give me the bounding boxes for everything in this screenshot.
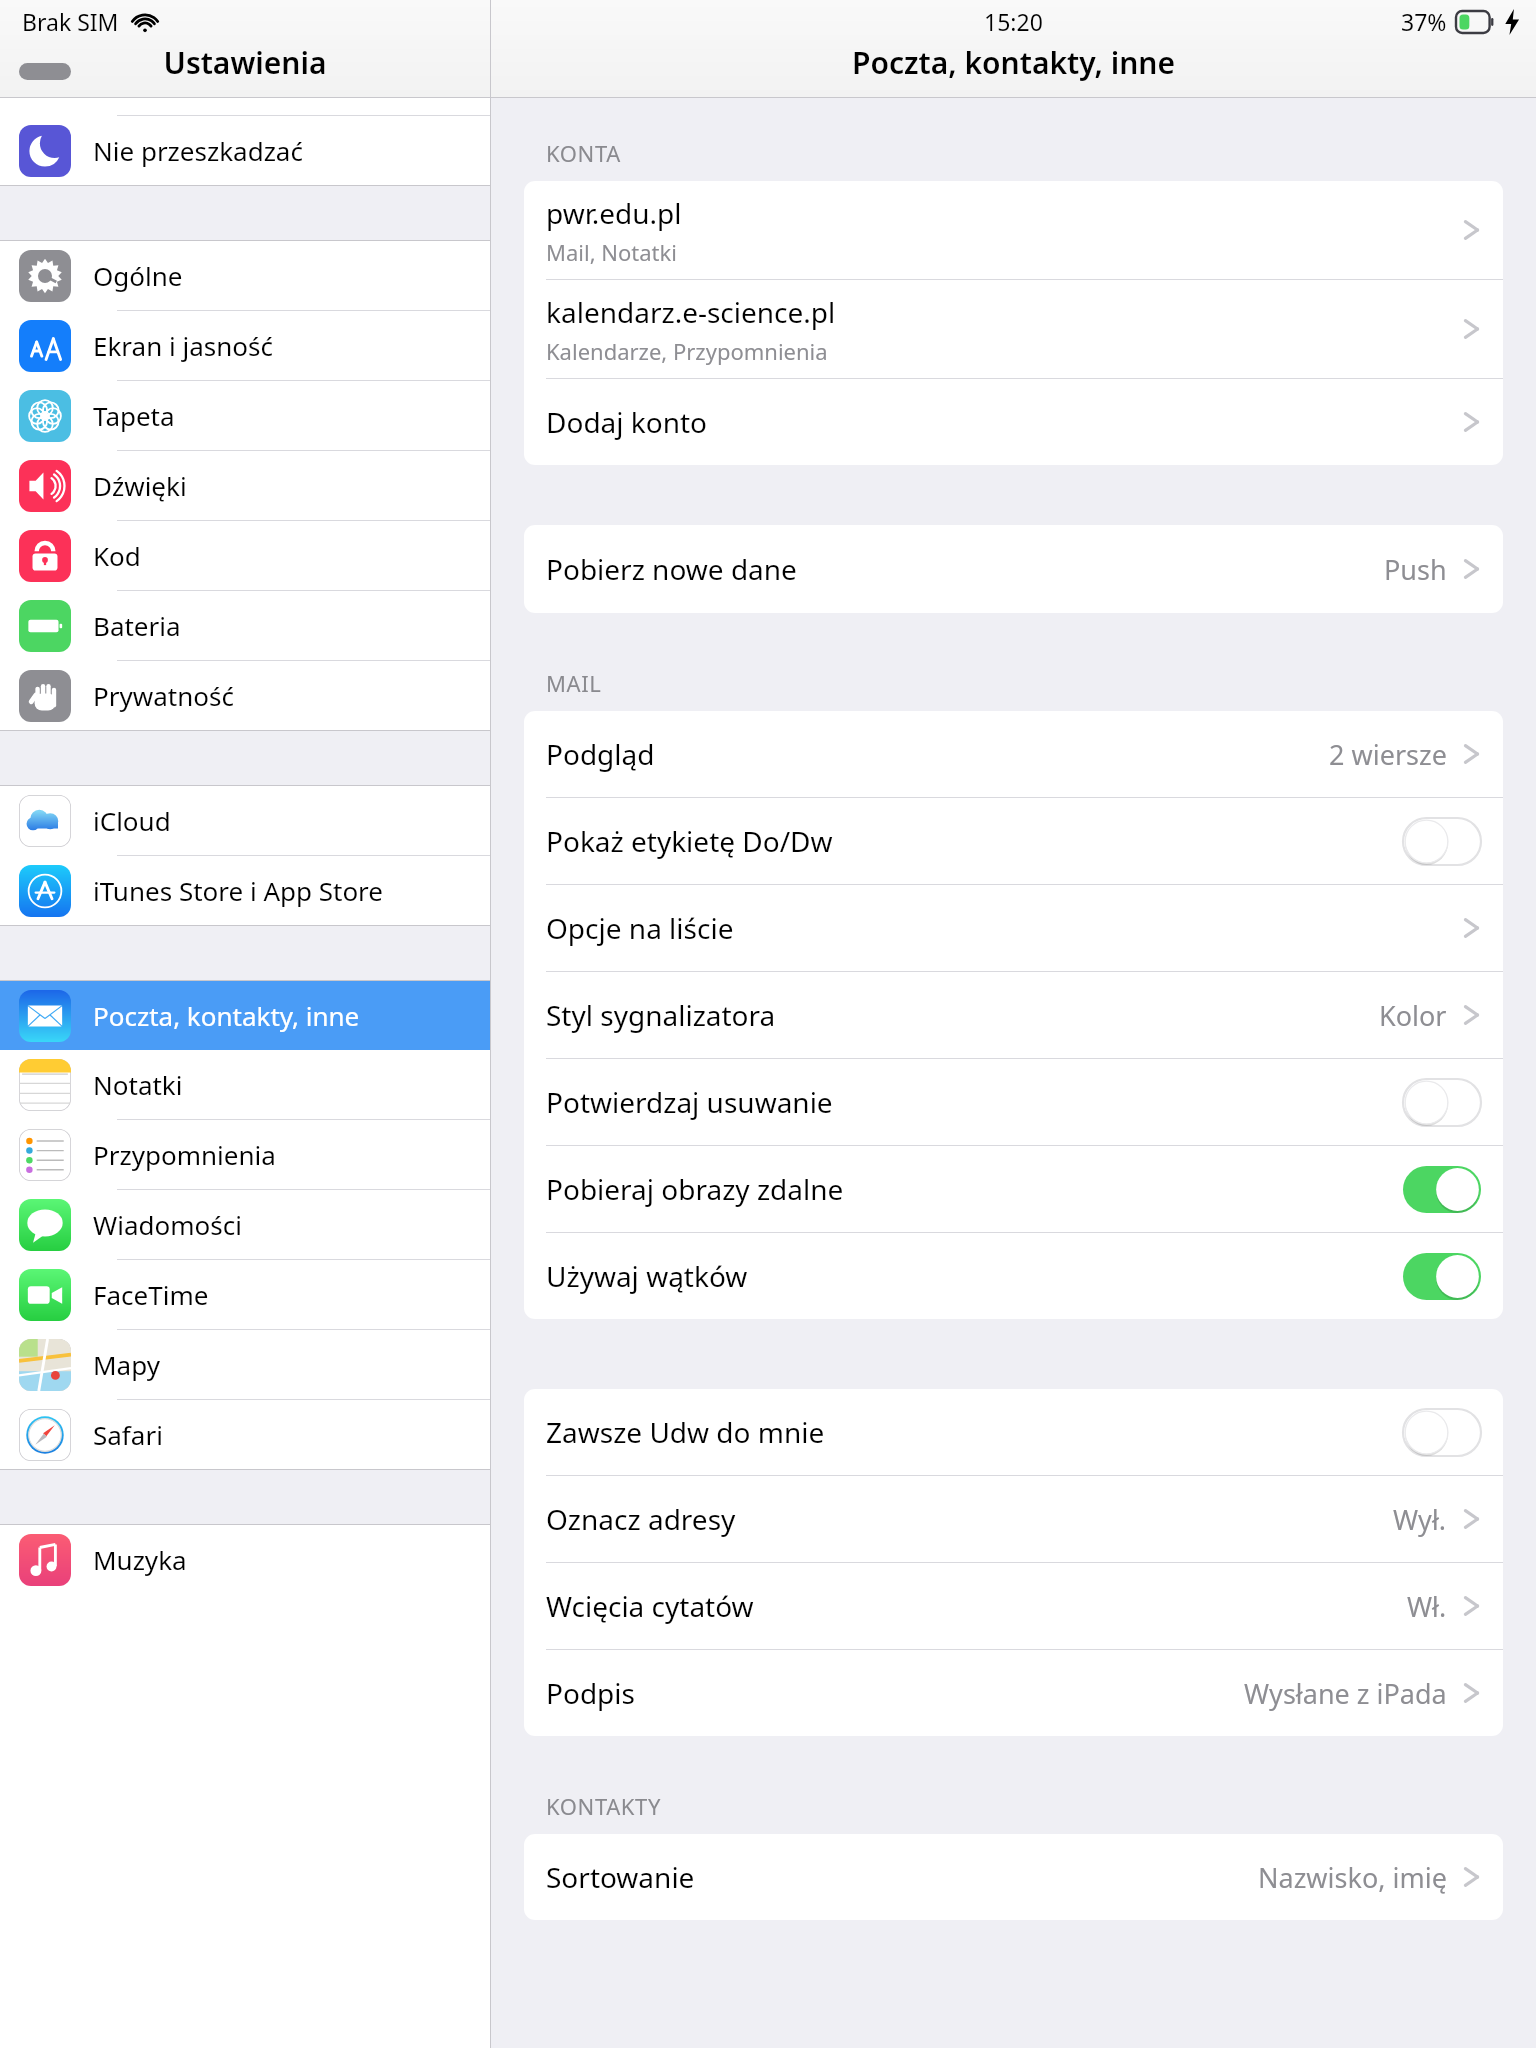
button[interactable]	[1403, 1079, 1481, 1126]
staticText: 2 wiersze	[1329, 736, 1447, 773]
staticText: 37%	[1401, 6, 1447, 37]
button[interactable]: Muzyka	[0, 1525, 490, 1594]
staticText: Przypomnienia	[93, 1137, 276, 1172]
button[interactable]: Wiadomości	[0, 1190, 490, 1259]
staticText: Używaj wątków	[546, 1257, 748, 1295]
staticText: Opcje na liście	[546, 909, 734, 947]
staticText: Push	[1384, 551, 1447, 588]
staticText: Zawsze Udw do mnie	[546, 1413, 825, 1451]
button[interactable]: iTunes Store i App Store	[0, 856, 490, 925]
button[interactable]: Podgląd	[524, 711, 1503, 797]
staticText: Ogólne	[93, 258, 183, 293]
staticText: Wysłane z iPada	[1244, 1675, 1447, 1712]
button[interactable]: Prywatność	[0, 661, 490, 730]
button[interactable]: Podpis	[524, 1650, 1503, 1736]
staticText: Pobierz nowe dane	[546, 550, 797, 588]
staticText: MAIL	[546, 668, 602, 698]
button[interactable]: Notatki	[0, 1050, 490, 1119]
staticText: Dodaj konto	[546, 403, 708, 441]
staticText: Podpis	[546, 1674, 635, 1712]
staticText: 15:20	[984, 6, 1043, 37]
button[interactable]: pwr.edu.pl	[524, 181, 1503, 279]
staticText: iTunes Store i App Store	[93, 873, 384, 908]
button[interactable]	[1403, 1253, 1481, 1300]
button[interactable]: kalendarz.e-science.pl	[524, 280, 1503, 378]
staticText: Wył.	[1393, 1501, 1447, 1538]
staticText: Wiadomości	[93, 1207, 242, 1242]
button[interactable]: Przypomnienia	[0, 1120, 490, 1189]
button[interactable]: Mapy	[0, 1330, 490, 1399]
staticText: iCloud	[93, 803, 171, 838]
button[interactable]: Dźwięki	[0, 451, 490, 520]
staticText: Podgląd	[546, 735, 655, 773]
button[interactable]: Kod	[0, 521, 490, 590]
button[interactable]: Pokaż etykietę Do/Dw	[524, 798, 1503, 884]
button[interactable]: Bateria	[0, 591, 490, 660]
staticText: Pokaż etykietę Do/Dw	[546, 822, 833, 860]
button[interactable]: Oznacz adresy	[524, 1476, 1503, 1562]
button[interactable]: Pobierz nowe dane	[524, 525, 1503, 613]
staticText: Styl sygnalizatora	[546, 996, 776, 1034]
button[interactable]: Używaj wątków	[524, 1233, 1503, 1319]
staticText: Wcięcia cytatów	[546, 1587, 754, 1625]
staticText: Oznacz adresy	[546, 1500, 736, 1538]
staticText: KONTA	[546, 138, 621, 168]
staticText: Mail, Notatki	[546, 237, 677, 267]
button[interactable]: Wcięcia cytatów	[524, 1563, 1503, 1649]
staticText: Ustawienia	[0, 42, 490, 83]
staticText: Prywatność	[93, 678, 234, 713]
staticText: Dźwięki	[93, 468, 187, 503]
staticText: Nie przeszkadzać	[93, 133, 303, 168]
button[interactable]: Zawsze Udw do mnie	[524, 1389, 1503, 1475]
button[interactable]: Ekran i jasność	[0, 311, 490, 380]
staticText: Nazwisko, imię	[1258, 1859, 1447, 1896]
staticText: Mapy	[93, 1347, 160, 1382]
staticText: Potwierdzaj usuwanie	[546, 1083, 833, 1121]
staticText: Bateria	[93, 608, 181, 643]
staticText: FaceTime	[93, 1277, 209, 1312]
staticText: Ekran i jasność	[93, 328, 273, 363]
button[interactable]	[1403, 1409, 1481, 1456]
button[interactable]	[1403, 818, 1481, 865]
staticText: Poczta, kontakty, inne	[491, 42, 1536, 83]
button[interactable]	[1403, 1166, 1481, 1213]
staticText: Muzyka	[93, 1542, 187, 1577]
staticText: Kalendarze, Przypomnienia	[546, 336, 828, 366]
button[interactable]: Opcje na liście	[524, 885, 1503, 971]
button[interactable]: Styl sygnalizatora	[524, 972, 1503, 1058]
button[interactable]: Tapeta	[0, 381, 490, 450]
staticText: Notatki	[93, 1067, 183, 1102]
button[interactable]: Dodaj konto	[524, 379, 1503, 465]
button[interactable]: Poczta, kontakty, inne	[0, 981, 490, 1050]
staticText: pwr.edu.pl	[546, 194, 682, 232]
button[interactable]: Ogólne	[0, 241, 490, 310]
staticText: Poczta, kontakty, inne	[93, 998, 360, 1033]
button[interactable]: iCloud	[0, 786, 490, 855]
staticText: KONTAKTY	[546, 1791, 661, 1821]
button[interactable]: Nie przeszkadzać	[0, 116, 490, 185]
staticText: Kolor	[1379, 997, 1447, 1034]
button[interactable]: Potwierdzaj usuwanie	[524, 1059, 1503, 1145]
staticText: Safari	[93, 1417, 163, 1452]
staticText: Sortowanie	[546, 1858, 695, 1896]
button[interactable]: FaceTime	[0, 1260, 490, 1329]
button[interactable]: Safari	[0, 1400, 490, 1469]
staticText: Tapeta	[93, 398, 175, 433]
button[interactable]: Pobieraj obrazy zdalne	[524, 1146, 1503, 1232]
button[interactable]: Sortowanie	[524, 1834, 1503, 1920]
staticText: Brak SIM	[22, 6, 119, 37]
staticText: Pobieraj obrazy zdalne	[546, 1170, 844, 1208]
staticText: Wł.	[1407, 1588, 1447, 1625]
staticText: kalendarz.e-science.pl	[546, 293, 836, 331]
staticText: Kod	[93, 538, 141, 573]
